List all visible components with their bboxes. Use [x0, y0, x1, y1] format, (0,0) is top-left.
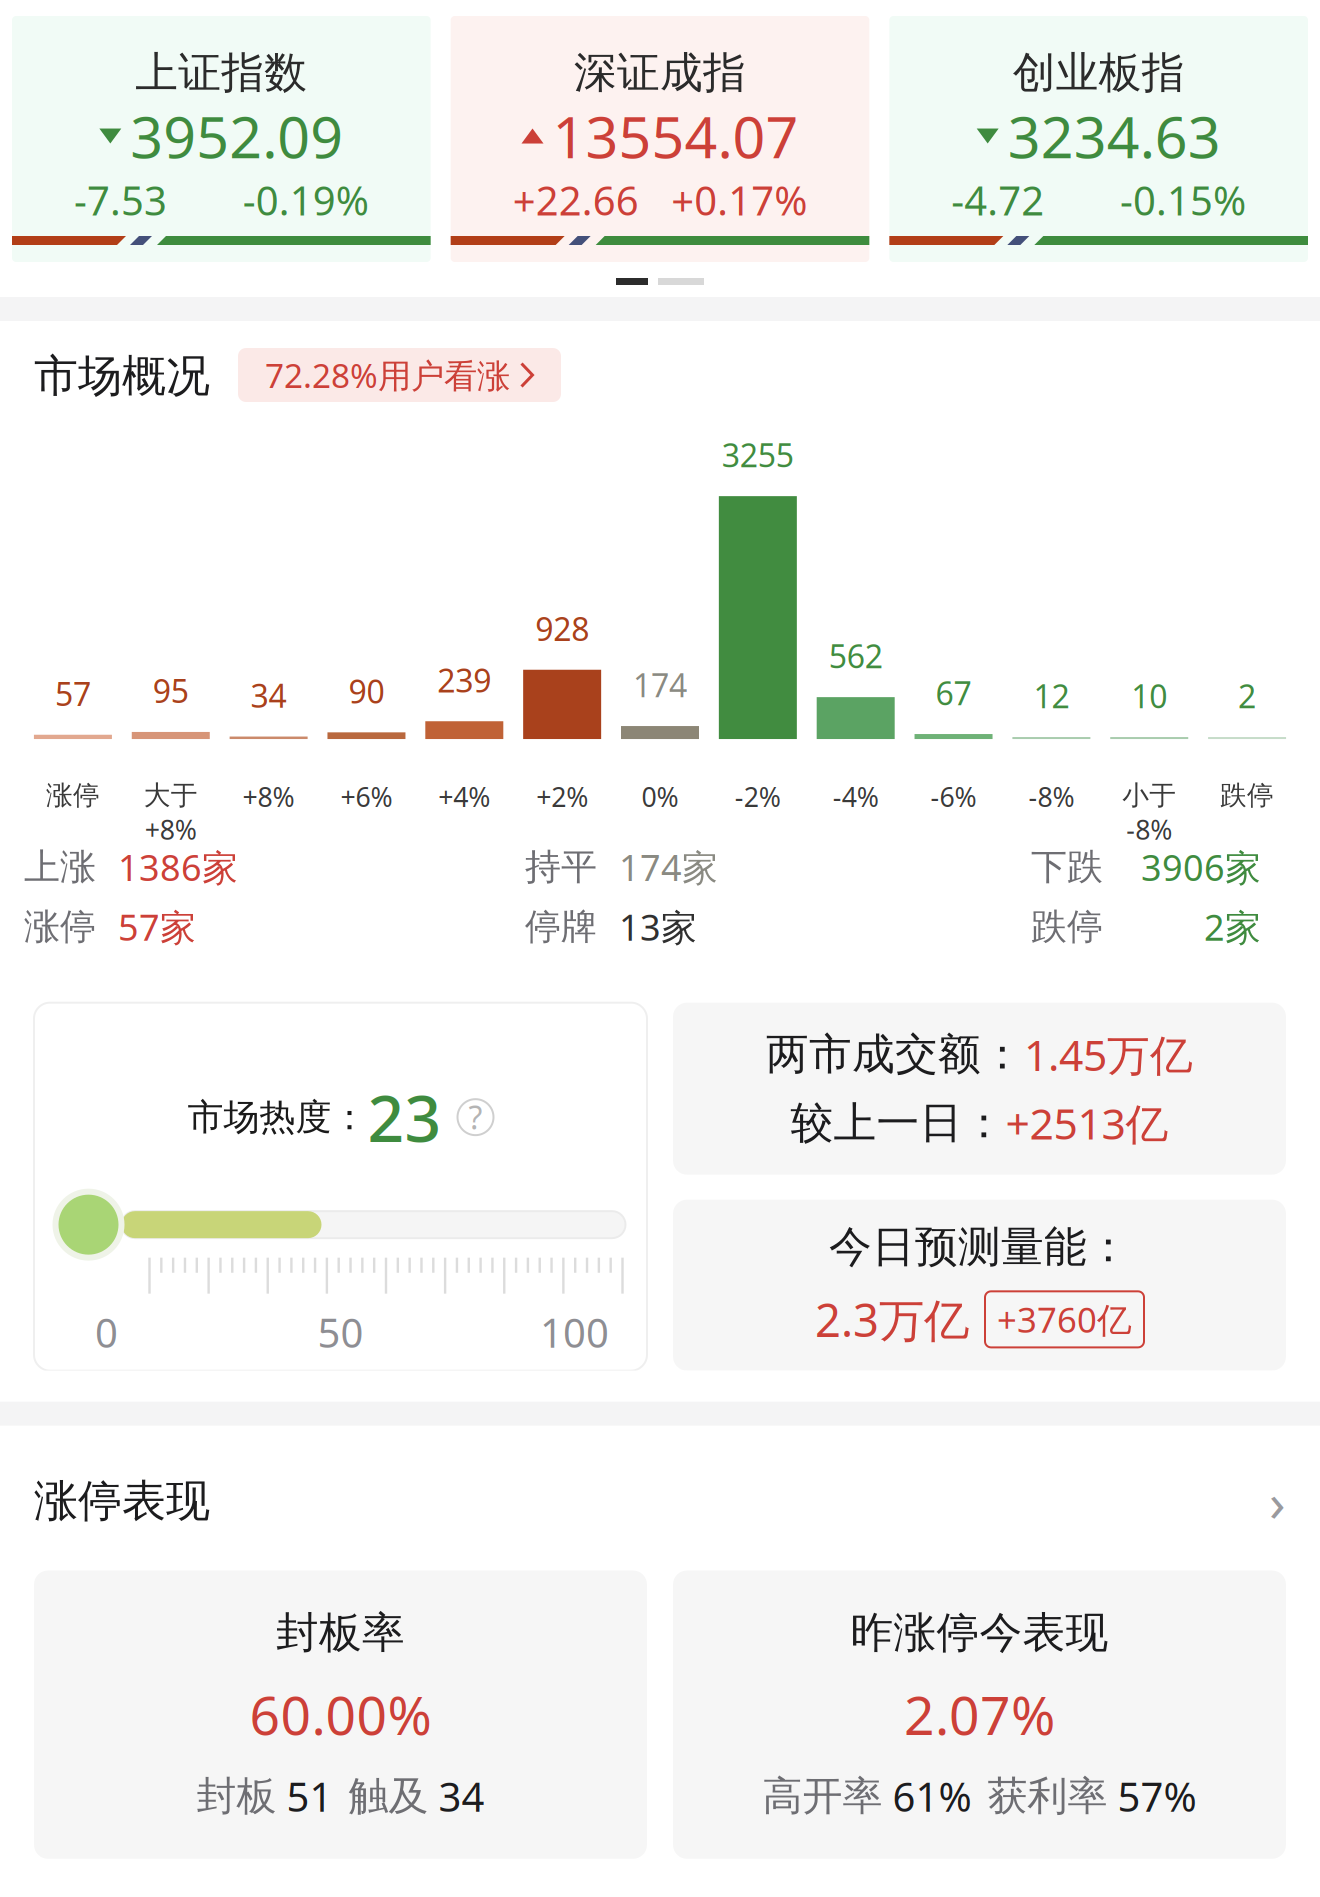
staticText: 174: [633, 663, 687, 706]
staticText: 涨停: [46, 779, 100, 812]
staticText: 小于: [1122, 779, 1176, 812]
staticText: 触及: [348, 1772, 428, 1821]
staticText: 12: [1033, 674, 1069, 717]
staticText: 上证指数: [135, 47, 307, 99]
staticText: 928: [535, 607, 589, 650]
staticText: 今日预测量能：: [829, 1221, 1130, 1273]
staticText: +6%: [340, 779, 392, 814]
staticText: 57%: [1117, 1770, 1196, 1823]
staticText: +3760亿: [997, 1296, 1132, 1342]
staticText: 3255: [722, 434, 794, 476]
staticText: 高开率: [762, 1772, 882, 1821]
button[interactable]: 72.28%用户看涨: [238, 348, 561, 402]
staticText: ?: [468, 1096, 482, 1138]
staticText: 34: [438, 1770, 484, 1823]
staticText: 13家: [619, 903, 697, 951]
staticText: 获利率: [987, 1772, 1107, 1821]
button[interactable]: 涨停表现: [0, 1426, 1320, 1536]
staticText: ›: [1269, 1466, 1286, 1536]
staticText: 跌停: [1031, 905, 1103, 949]
staticText: 涨停表现: [34, 1474, 210, 1528]
staticText: 23: [367, 1075, 441, 1160]
staticText: 市场概况: [34, 349, 210, 403]
staticText: 持平: [525, 845, 597, 889]
staticText: 562: [829, 635, 883, 677]
button[interactable]: 创业板指: [889, 16, 1308, 262]
staticText: 昨涨停今表现: [850, 1606, 1108, 1659]
button[interactable]: 上证指数: [12, 16, 431, 262]
staticText: 95: [153, 669, 189, 712]
staticText: +8%: [145, 812, 197, 847]
staticText: 2家: [1204, 903, 1261, 951]
staticText: +4%: [438, 779, 490, 814]
staticText: 2.07%: [904, 1679, 1055, 1750]
staticText: +22.66: [513, 173, 639, 226]
staticText: 61%: [892, 1770, 971, 1823]
staticText: 50: [317, 1306, 363, 1359]
staticText: -8%: [1028, 779, 1074, 814]
staticText: 停牌: [525, 905, 597, 949]
staticText: 57: [55, 672, 91, 715]
button[interactable]: 深证成指: [451, 16, 869, 262]
staticText: 34: [251, 674, 287, 716]
staticText: 封板率: [276, 1606, 405, 1659]
staticText: 72.28%用户看涨: [265, 353, 510, 397]
staticText: -7.53: [74, 173, 167, 226]
staticText: +8%: [243, 779, 295, 814]
staticText: 2.3万亿: [815, 1289, 969, 1349]
staticText: 1386家: [118, 843, 238, 891]
staticText: 1.45万亿: [1024, 1026, 1193, 1083]
staticText: 两市成交额：: [766, 1028, 1024, 1080]
staticText: 174家: [619, 843, 718, 891]
staticText: 跌停: [1220, 779, 1274, 812]
staticText: -0.19%: [243, 173, 369, 226]
staticText: 下跌: [1031, 845, 1103, 889]
staticText: +0.17%: [671, 173, 807, 226]
staticText: 封板: [196, 1772, 276, 1821]
staticText: 深证成指: [574, 47, 746, 99]
staticText: 239: [437, 659, 491, 701]
staticText: 13554.07: [552, 98, 798, 174]
staticText: 0: [95, 1306, 118, 1359]
staticText: 67: [935, 671, 971, 714]
staticText: 涨停: [24, 905, 96, 949]
staticText: +2%: [536, 779, 588, 814]
staticText: 100: [540, 1306, 609, 1359]
staticText: 3234.63: [1008, 98, 1221, 174]
staticText: -4.72: [951, 173, 1044, 226]
staticText: 60.00%: [249, 1679, 431, 1750]
staticText: 0%: [641, 779, 678, 814]
staticText: 3952.09: [130, 98, 343, 174]
staticText: 上涨: [24, 845, 96, 889]
staticText: -0.15%: [1120, 173, 1246, 226]
staticText: 大于: [144, 779, 198, 812]
staticText: -8%: [1126, 812, 1172, 847]
staticText: 市场热度：: [187, 1095, 367, 1139]
staticText: -6%: [930, 779, 976, 814]
staticText: 创业板指: [1013, 47, 1185, 99]
staticText: 51: [286, 1770, 332, 1823]
staticText: 10: [1131, 674, 1167, 717]
staticText: 57家: [118, 903, 196, 951]
staticText: 较上一日：: [790, 1097, 1005, 1149]
staticText: 2: [1238, 674, 1256, 717]
staticText: -4%: [833, 779, 879, 814]
staticText: +2513亿: [1005, 1095, 1168, 1151]
staticText: -2%: [735, 779, 781, 814]
staticText: 3906家: [1141, 843, 1261, 891]
staticText: 90: [348, 670, 384, 712]
